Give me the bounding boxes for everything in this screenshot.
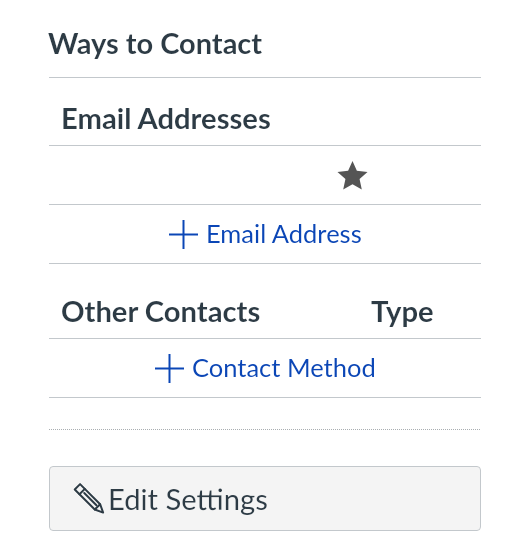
- staticText: Edit Settings: [108, 481, 268, 516]
- button[interactable]: Edit Settings: [49, 466, 481, 531]
- staticText: Contact Method: [192, 352, 376, 383]
- button[interactable]: Default email address: [338, 161, 367, 190]
- staticText: Type: [371, 293, 434, 328]
- button[interactable]: Email Address: [49, 205, 481, 264]
- staticText: Email Addresses: [61, 100, 271, 135]
- staticText: Email Address: [206, 218, 362, 249]
- staticText: Ways to Contact: [48, 25, 263, 60]
- button[interactable]: Contact Method: [49, 339, 481, 397]
- staticText: Other Contacts: [61, 293, 261, 328]
